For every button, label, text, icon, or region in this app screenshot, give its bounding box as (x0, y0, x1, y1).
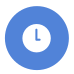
button[interactable]: Clock (0, 0, 74, 74)
